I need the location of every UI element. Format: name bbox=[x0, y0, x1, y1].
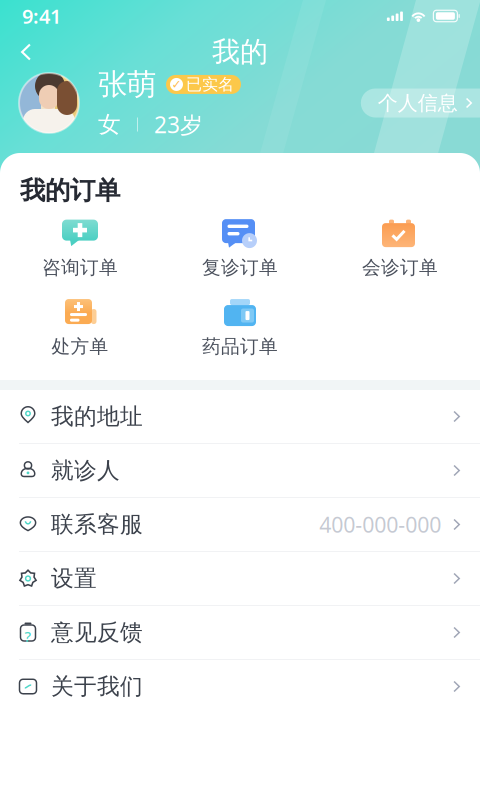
staticText: 复诊订单 bbox=[202, 256, 278, 279]
button[interactable]: 处方单 bbox=[0, 298, 160, 358]
button[interactable]: 设置 bbox=[0, 552, 480, 606]
staticText: 张萌 bbox=[98, 66, 156, 102]
button[interactable]: 关于我们 bbox=[0, 660, 480, 713]
button[interactable]: 我的地址 bbox=[0, 390, 480, 444]
button[interactable]: 会诊订单 bbox=[320, 219, 480, 279]
button[interactable]: 咨询订单 bbox=[0, 219, 160, 279]
staticText: 个人信息 bbox=[378, 91, 458, 115]
staticText: 设置 bbox=[51, 565, 97, 592]
button[interactable]: ? bbox=[0, 606, 480, 660]
staticText: 23岁 bbox=[154, 109, 203, 140]
button[interactable]: 联系客服 bbox=[0, 498, 480, 552]
button[interactable]: 就诊人 bbox=[0, 444, 480, 498]
button[interactable]: Back bbox=[6, 35, 46, 69]
staticText: 400-000-000 bbox=[319, 510, 441, 539]
staticText: 药品订单 bbox=[202, 335, 278, 358]
staticText: ? bbox=[24, 626, 31, 646]
staticText: 联系客服 bbox=[51, 511, 143, 538]
staticText: 意见反馈 bbox=[51, 619, 143, 646]
button[interactable]: 药品订单 bbox=[160, 298, 320, 358]
button[interactable]: 复诊订单 bbox=[160, 219, 320, 279]
staticText: 我的 bbox=[212, 35, 268, 69]
staticText: 关于我们 bbox=[51, 673, 143, 700]
button[interactable]: 个人信息 bbox=[361, 88, 480, 117]
staticText: 我的地址 bbox=[51, 403, 143, 430]
staticText: 会诊订单 bbox=[362, 256, 438, 279]
staticText: ✓ bbox=[171, 78, 181, 91]
staticText: 女 bbox=[98, 111, 121, 138]
staticText: 已实名 bbox=[186, 75, 234, 94]
staticText: 咨询订单 bbox=[42, 256, 118, 279]
staticText: 9:41 bbox=[22, 3, 61, 29]
staticText: 就诊人 bbox=[51, 457, 120, 484]
staticText: 处方单 bbox=[51, 335, 108, 358]
staticText: 我的订单 bbox=[20, 175, 120, 206]
